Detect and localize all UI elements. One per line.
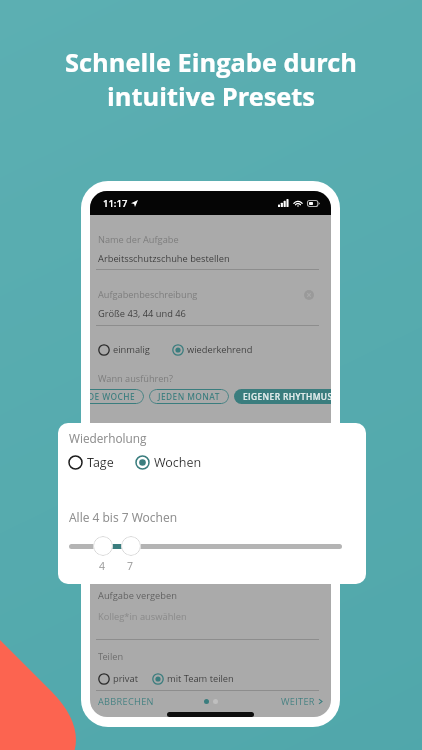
button[interactable]: Slider handle	[93, 536, 113, 556]
staticText: 7	[127, 559, 134, 573]
button[interactable]: JEDEN MONAT	[149, 389, 229, 404]
staticText: Teilen	[98, 650, 124, 663]
button[interactable]: WEITER	[273, 691, 331, 712]
button[interactable]: mit Team teilen	[152, 672, 234, 685]
staticText: Kolleg*in auswählen	[98, 610, 187, 623]
staticText: Größe 43, 44 und 46	[98, 307, 186, 320]
button[interactable]: privat	[98, 672, 138, 685]
staticText: Arbeitsschutzschuhe bestellen	[98, 252, 230, 265]
staticText: Name der Aufgabe	[98, 233, 179, 246]
staticText: 4	[99, 559, 106, 573]
staticText: Wochen	[154, 454, 202, 471]
staticText: Alle 4 bis 7 Wochen	[69, 509, 177, 525]
staticText: Schnelle Eingabe durch intuitive Presets	[0, 45, 422, 113]
button[interactable]: JEDE WOCHE	[90, 389, 144, 404]
staticText: privat	[113, 672, 138, 685]
staticText: Wann ausführen?	[98, 372, 173, 385]
button[interactable]: Clear description	[304, 290, 314, 300]
button[interactable]: wiederkehrend	[172, 343, 253, 356]
staticText: Aufgabenbeschreibung	[98, 288, 198, 301]
button[interactable]: einmalig	[98, 343, 150, 356]
staticText: Aufgabe vergeben	[98, 589, 177, 602]
staticText: einmalig	[113, 343, 150, 356]
staticText: 11:17	[103, 197, 128, 210]
staticText: JEDE WOCHE	[90, 391, 135, 402]
staticText: wiederkehrend	[187, 343, 253, 356]
staticText: JEDEN MONAT	[158, 391, 220, 402]
staticText: WEITER	[281, 695, 315, 708]
button[interactable]: ABBRECHEN	[90, 691, 162, 712]
staticText: Tage	[87, 454, 114, 471]
button[interactable]: Tage	[68, 454, 114, 471]
staticText: ABBRECHEN	[98, 695, 154, 708]
staticText: Wiederholung	[69, 430, 147, 446]
button[interactable]: Slider handle	[121, 536, 141, 556]
staticText: EIGENER RHYTHMUS	[243, 391, 331, 402]
button[interactable]: Wochen	[135, 454, 202, 471]
staticText: mit Team teilen	[167, 672, 234, 685]
button[interactable]: EIGENER RHYTHMUS	[234, 389, 331, 404]
